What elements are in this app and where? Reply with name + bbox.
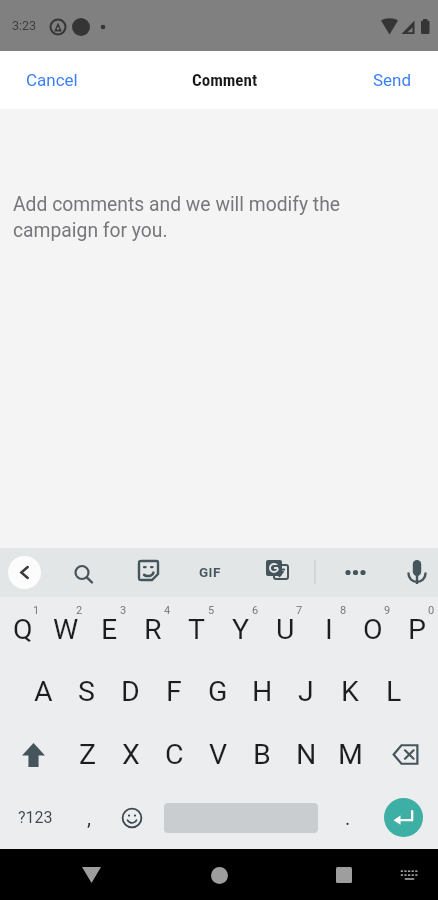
button[interactable]: Shift [0, 723, 66, 786]
button[interactable]: B [240, 723, 284, 786]
staticText: Add comments and we will modify the camp… [13, 193, 341, 241]
button[interactable]: Backspace [372, 723, 438, 786]
button[interactable]: E [86, 597, 130, 660]
staticText: N [296, 738, 317, 771]
staticText: U [276, 613, 295, 646]
staticText: J [298, 675, 314, 708]
button[interactable]: Send [353, 53, 438, 107]
button[interactable]: S [65, 660, 108, 723]
button[interactable]: Cancel [0, 53, 98, 107]
staticText: ?123 [18, 808, 53, 827]
button[interactable]: More options [336, 553, 374, 591]
button[interactable]: Q [0, 597, 43, 660]
button[interactable]: Close toolbar [8, 556, 41, 589]
staticText: T [188, 613, 206, 646]
staticText: M [338, 738, 363, 771]
button[interactable]: R [130, 597, 174, 660]
staticText: . [345, 806, 351, 829]
button[interactable]: Z [66, 723, 109, 786]
staticText: Cancel [26, 70, 78, 90]
button[interactable]: Y [218, 597, 262, 660]
staticText: W [53, 613, 79, 646]
button[interactable]: Enter [368, 786, 438, 849]
button[interactable]: Switch keyboard [387, 852, 431, 896]
staticText: Comment [192, 70, 258, 90]
button[interactable]: T [174, 597, 218, 660]
button[interactable]: Stickers [129, 553, 167, 591]
button[interactable]: Home [196, 852, 242, 898]
staticText: Z [79, 738, 97, 771]
staticText: 4 [164, 604, 171, 617]
staticText: L [386, 675, 402, 708]
button[interactable]: Search [62, 553, 100, 591]
staticText: 3:23 [12, 18, 37, 33]
button[interactable]: C [152, 723, 196, 786]
button[interactable]: , [67, 786, 111, 849]
staticText: I [325, 613, 333, 646]
button[interactable]: P [394, 597, 438, 660]
staticText: 1 [33, 604, 40, 617]
button[interactable]: Recents [321, 852, 367, 898]
button[interactable]: Voice input [398, 553, 436, 591]
staticText: A [34, 675, 53, 708]
button[interactable]: U [262, 597, 306, 660]
staticText: 5 [208, 604, 215, 617]
button[interactable]: I [306, 597, 350, 660]
button[interactable]: D [108, 660, 152, 723]
button[interactable]: O [350, 597, 394, 660]
button[interactable]: W [43, 597, 86, 660]
button[interactable]: G [196, 660, 240, 723]
button[interactable]: N [284, 723, 328, 786]
staticText: D [121, 675, 140, 708]
staticText: X [122, 738, 140, 771]
button[interactable]: J [284, 660, 328, 723]
staticText: K [341, 675, 359, 708]
button[interactable]: A [22, 660, 65, 723]
staticText: Y [232, 613, 250, 646]
staticText: Q [13, 613, 33, 646]
staticText: S [78, 675, 95, 708]
staticText: F [166, 675, 182, 708]
button[interactable]: M [328, 723, 372, 786]
staticText: V [209, 738, 228, 771]
staticText: 2 [76, 604, 83, 617]
button[interactable]: F [152, 660, 196, 723]
staticText: 8 [340, 604, 347, 617]
staticText: 6 [252, 604, 259, 617]
staticText: , [87, 806, 91, 829]
staticText: G [208, 675, 228, 708]
staticText: 7 [296, 604, 303, 617]
button[interactable]: . [328, 786, 368, 849]
staticText: 3 [120, 604, 127, 617]
staticText: P [408, 613, 426, 646]
staticText: Send [373, 70, 412, 90]
button[interactable]: X [109, 723, 152, 786]
staticText: O [363, 613, 383, 646]
staticText: C [165, 738, 184, 771]
staticText: GIF [199, 564, 221, 580]
button[interactable]: GIF [190, 553, 230, 591]
button[interactable]: Translate [258, 553, 296, 591]
staticText: H [252, 675, 273, 708]
staticText: 9 [384, 604, 391, 617]
staticText: 0 [428, 604, 435, 617]
button[interactable]: H [240, 660, 284, 723]
button[interactable]: Emoji [110, 786, 154, 849]
button[interactable]: Back [68, 852, 114, 898]
button[interactable]: K [328, 660, 372, 723]
staticText: R [144, 613, 162, 646]
button[interactable]: ?123 [8, 786, 62, 849]
button[interactable]: Space [154, 786, 328, 849]
button[interactable]: L [372, 660, 416, 723]
staticText: B [253, 738, 271, 771]
button[interactable]: V [196, 723, 240, 786]
staticText: E [101, 613, 118, 646]
